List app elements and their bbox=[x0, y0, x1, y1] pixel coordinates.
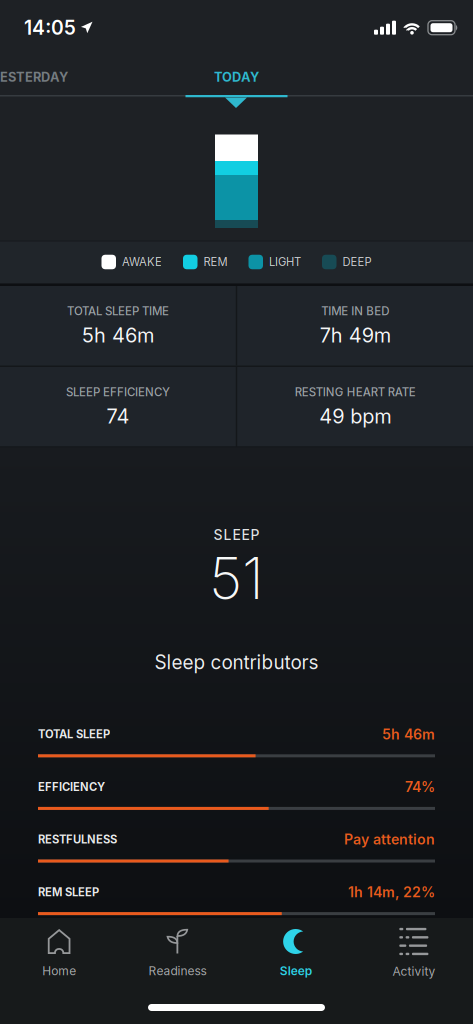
staticText: 1h 14m, 22% bbox=[348, 883, 435, 901]
staticText: AWAKE bbox=[122, 255, 162, 269]
staticText: Pay attention bbox=[344, 831, 435, 848]
button[interactable]: Readiness bbox=[118, 928, 236, 978]
staticText: RESTFULNESS bbox=[38, 833, 117, 846]
staticText: 49 bpm bbox=[319, 404, 391, 428]
staticText: 74% bbox=[405, 778, 435, 795]
staticText: TOTAL SLEEP bbox=[38, 727, 110, 741]
staticText: Home bbox=[42, 963, 76, 978]
staticText: 5h 46m bbox=[82, 323, 154, 347]
staticText: Sleep bbox=[280, 963, 312, 978]
staticText: 7h 49m bbox=[320, 323, 391, 347]
staticText: ESTERDAY bbox=[0, 69, 68, 85]
button[interactable]: ESTERDAY bbox=[0, 69, 68, 85]
staticText: TIME IN BED bbox=[321, 304, 389, 318]
staticText: Sleep contributors bbox=[154, 651, 318, 674]
staticText: TODAY bbox=[214, 69, 259, 85]
button[interactable]: TODAY bbox=[214, 69, 259, 85]
staticText: RESTING HEART RATE bbox=[295, 385, 416, 399]
staticText: 5h 46m bbox=[382, 726, 435, 743]
staticText: S L E E P bbox=[213, 526, 259, 543]
staticText: 51 bbox=[209, 543, 264, 613]
staticText: REM bbox=[203, 255, 227, 269]
staticText: DEEP bbox=[342, 255, 371, 269]
staticText: Readiness bbox=[148, 963, 206, 978]
staticText: SLEEP EFFICIENCY bbox=[66, 385, 170, 399]
staticText: TOTAL SLEEP TIME bbox=[67, 304, 169, 318]
button[interactable]: Activity bbox=[355, 928, 473, 978]
button[interactable]: Sleep bbox=[236, 928, 355, 978]
staticText: Activity bbox=[392, 964, 435, 978]
staticText: 74 bbox=[106, 404, 129, 428]
staticText: EFFICIENCY bbox=[38, 780, 105, 794]
button[interactable]: Home bbox=[0, 928, 118, 978]
staticText: LIGHT bbox=[269, 255, 301, 269]
staticText: REM SLEEP bbox=[38, 885, 99, 899]
staticText: 14:05 bbox=[24, 16, 76, 39]
